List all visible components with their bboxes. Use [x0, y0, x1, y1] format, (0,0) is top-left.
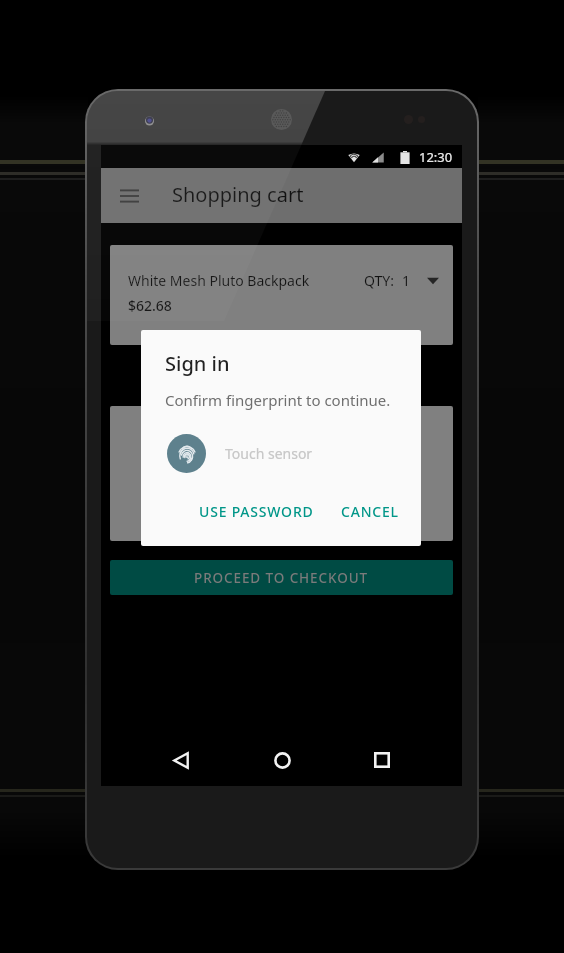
- staticText: 12:30: [419, 148, 453, 166]
- button[interactable]: White Mesh Pluto Backpack: [110, 245, 453, 345]
- staticText: CANCEL: [341, 502, 399, 521]
- button[interactable]: CANCEL: [333, 493, 407, 530]
- staticText: USE PASSWORD: [199, 502, 314, 521]
- button[interactable]: Recent apps: [361, 739, 403, 781]
- staticText: PROCEED TO CHECKOUT: [194, 569, 369, 587]
- staticText: Confirm fingerprint to continue.: [165, 390, 391, 410]
- button[interactable]: USE PASSWORD: [191, 493, 322, 530]
- staticText: White Mesh Pluto Backpack: [128, 271, 310, 290]
- button[interactable]: Open navigation menu: [109, 176, 149, 216]
- staticText: Shopping cart: [172, 181, 304, 208]
- staticText: Touch sensor: [225, 444, 313, 463]
- button[interactable]: Home: [261, 739, 303, 781]
- staticText: Sign in: [165, 350, 230, 377]
- button[interactable]: [110, 406, 453, 541]
- button[interactable]: PROCEED TO CHECKOUT: [110, 560, 453, 595]
- staticText: $62.68: [128, 296, 172, 315]
- button[interactable]: Back: [160, 739, 202, 781]
- staticText: QTY:: [364, 271, 394, 290]
- staticText: 1: [402, 271, 411, 290]
